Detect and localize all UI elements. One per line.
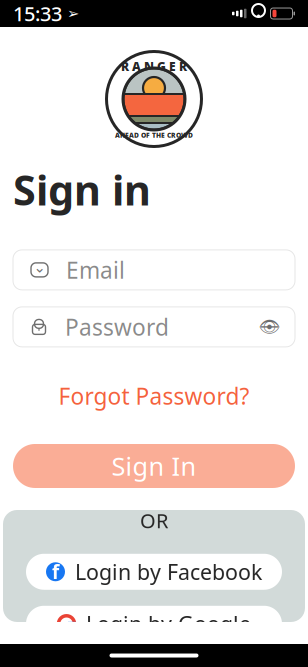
staticText: OR [140,507,168,534]
button[interactable]: Forgot Password? [48,377,259,415]
staticText: 👁 [258,317,280,337]
staticText: 15:33 [13,0,62,27]
staticText: Forgot Password? [58,381,249,411]
staticText: ➢ [62,5,79,22]
staticText: Sign in [13,162,151,217]
button[interactable]: f [3,554,305,590]
staticText: Email [66,255,125,285]
staticText: Login by Google [86,610,251,638]
button[interactable]: Sign In [0,444,308,488]
staticText: R A N G E R [121,58,187,74]
button[interactable]: Password [0,307,308,347]
button[interactable]: Login by Google [3,606,305,642]
staticText: Login by Facebook [75,558,262,586]
staticText: f [52,559,59,584]
staticText: Password [65,312,169,342]
staticText: ⌄ [33,259,45,276]
staticText: Sign In [111,449,196,483]
button[interactable]: ⌄ [0,250,308,290]
staticText: AHEAD OF THE CROWD [115,131,193,139]
